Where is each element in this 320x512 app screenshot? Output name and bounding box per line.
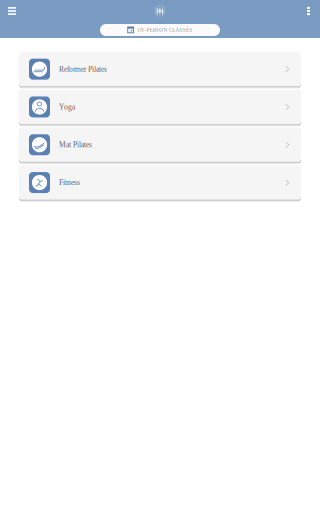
staticText: Fitness [59,178,80,187]
staticText: IN-PERSON CLASSES [138,27,192,33]
button[interactable]: Menu [0,0,24,22]
button[interactable]: More options [296,0,320,22]
button[interactable]: IN-PERSON CLASSES [100,24,220,36]
button[interactable]: Fitness [19,165,301,200]
button[interactable]: Reformer Pilates [19,52,301,86]
button[interactable]: Mat Pilates [19,128,301,162]
staticText: Yoga [59,103,75,111]
staticText: Mat Pilates [59,141,92,149]
button[interactable]: Yoga [19,90,301,124]
staticText: Reformer Pilates [59,65,107,73]
